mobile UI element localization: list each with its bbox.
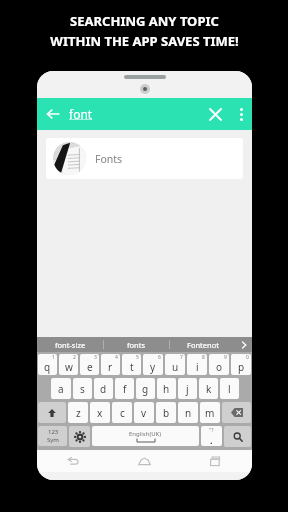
button[interactable]: More suggestions xyxy=(235,337,252,352)
staticText: font-size xyxy=(55,340,86,350)
button[interactable]: Recent apps xyxy=(180,450,252,472)
staticText: c xyxy=(120,406,125,420)
button[interactable]: Shift xyxy=(38,402,66,423)
button[interactable]: c xyxy=(112,402,132,423)
button[interactable]: 9 xyxy=(209,354,229,375)
staticText: r xyxy=(108,360,113,374)
staticText: d xyxy=(100,382,107,396)
button[interactable]: 4 xyxy=(101,354,120,375)
staticText: . xyxy=(210,434,213,446)
staticText: Fontenot xyxy=(187,340,219,350)
button[interactable]: x xyxy=(90,402,110,423)
staticText: 8 xyxy=(202,354,205,361)
button[interactable]: Back xyxy=(37,450,108,472)
staticText: a xyxy=(58,382,64,396)
button[interactable]: Keyboard settings xyxy=(69,426,90,447)
staticText: fonts xyxy=(127,340,146,350)
staticText: 4 xyxy=(115,354,118,361)
staticText: 1 xyxy=(52,354,55,361)
staticText: n xyxy=(185,406,192,420)
button[interactable]: Fontenot xyxy=(170,337,235,352)
staticText: SEARCHING ANY TOPIC xyxy=(70,12,219,30)
button[interactable]: n xyxy=(178,402,198,423)
button[interactable]: g xyxy=(136,378,155,399)
button[interactable]: 3 xyxy=(80,354,99,375)
staticText: 2 xyxy=(73,354,76,361)
button[interactable]: l xyxy=(220,378,239,399)
button[interactable]: 2 xyxy=(59,354,78,375)
staticText: b xyxy=(163,406,170,420)
staticText: WITHIN THE APP SAVES TIME! xyxy=(50,32,239,50)
button[interactable]: ''? xyxy=(201,426,222,446)
button[interactable]: b xyxy=(156,402,176,423)
button[interactable]: z xyxy=(68,402,88,423)
button[interactable]: 123 xyxy=(38,426,67,446)
staticText: x xyxy=(97,406,103,420)
staticText: English(UK) xyxy=(129,430,162,438)
button[interactable]: English(UK) xyxy=(92,426,199,446)
button[interactable]: m xyxy=(200,402,220,423)
staticText: y xyxy=(150,360,156,374)
staticText: e xyxy=(87,360,93,374)
staticText: z xyxy=(76,406,81,420)
staticText: 3 xyxy=(94,354,97,361)
staticText: m xyxy=(205,406,215,420)
staticText: g xyxy=(142,382,149,396)
button[interactable]: 0 xyxy=(231,354,251,375)
button[interactable]: j xyxy=(178,378,197,399)
button[interactable]: font-size xyxy=(37,337,103,352)
staticText: 5 xyxy=(136,354,139,361)
staticText: k xyxy=(206,382,212,396)
staticText: 6 xyxy=(158,354,161,361)
button[interactable]: v xyxy=(134,402,154,423)
staticText: v xyxy=(141,406,147,420)
staticText: i xyxy=(196,360,199,374)
staticText: f xyxy=(123,382,127,396)
button[interactable]: f xyxy=(115,378,134,399)
button[interactable]: Fonts xyxy=(46,138,243,179)
button[interactable]: 5 xyxy=(122,354,141,375)
staticText: q xyxy=(44,360,51,374)
staticText: j xyxy=(186,382,189,396)
staticText: s xyxy=(80,382,85,396)
staticText: u xyxy=(172,360,179,374)
button[interactable]: 8 xyxy=(187,354,207,375)
button[interactable]: Clear xyxy=(200,99,230,129)
button[interactable]: Back xyxy=(37,98,69,130)
button[interactable]: font xyxy=(69,106,200,122)
staticText: Sym xyxy=(47,436,59,444)
button[interactable]: s xyxy=(73,378,92,399)
button[interactable]: k xyxy=(199,378,218,399)
staticText: 9 xyxy=(224,354,227,361)
button[interactable]: Backspace xyxy=(222,402,251,423)
staticText: 123 xyxy=(48,428,59,436)
button[interactable]: a xyxy=(51,378,71,399)
button[interactable]: 1 xyxy=(38,354,57,375)
staticText: p xyxy=(238,360,245,374)
button[interactable]: fonts xyxy=(104,337,169,352)
button[interactable]: Home xyxy=(108,450,180,472)
staticText: ''? xyxy=(209,427,214,434)
staticText: font xyxy=(69,106,93,122)
staticText: h xyxy=(163,382,170,396)
staticText: o xyxy=(216,360,223,374)
button[interactable]: More options xyxy=(230,98,252,130)
staticText: Fonts xyxy=(95,152,123,166)
button[interactable]: h xyxy=(157,378,176,399)
staticText: 7 xyxy=(180,354,183,361)
staticText: t xyxy=(130,360,134,374)
staticText: 0 xyxy=(246,354,249,361)
button[interactable]: Search xyxy=(224,426,251,447)
button[interactable]: 7 xyxy=(165,354,185,375)
staticText: w xyxy=(65,360,73,374)
staticText: l xyxy=(228,382,231,396)
button[interactable]: 6 xyxy=(143,354,163,375)
button[interactable]: d xyxy=(94,378,113,399)
